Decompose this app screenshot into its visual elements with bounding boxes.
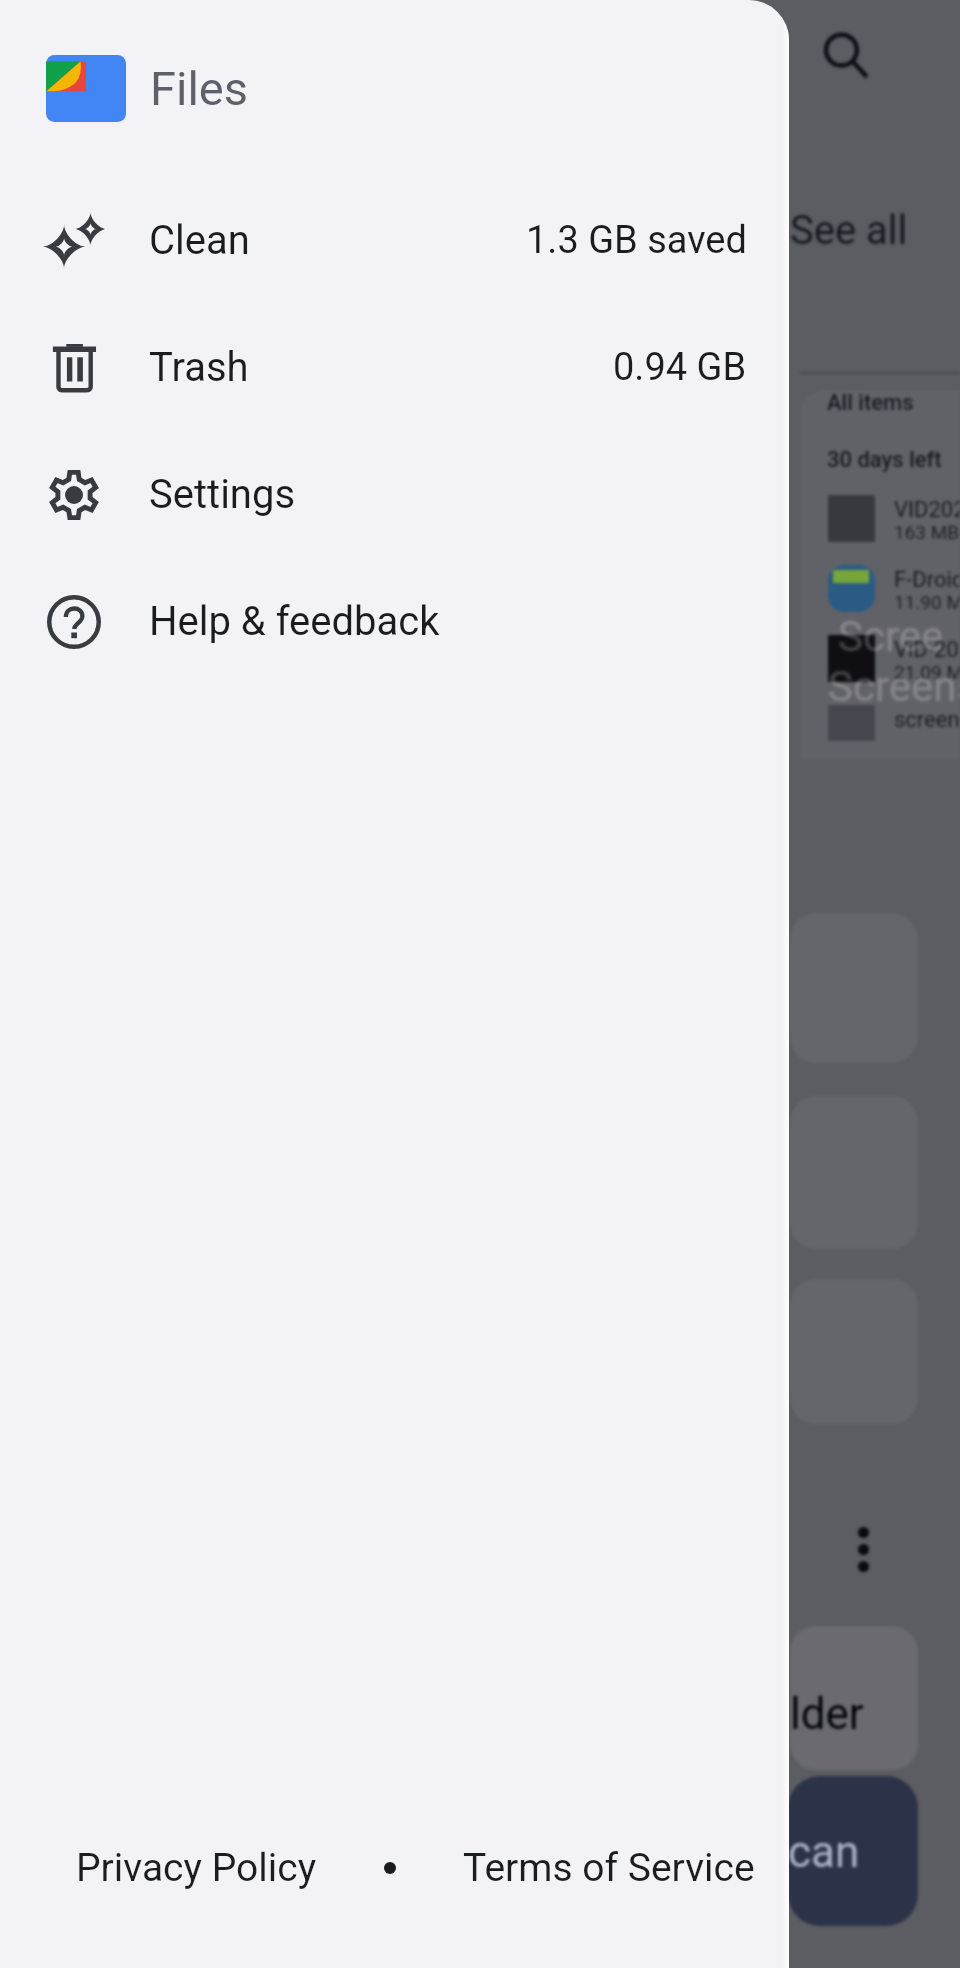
staticText: 163 MB, 30 [894, 521, 960, 543]
staticText: Screens [828, 662, 960, 711]
button[interactable]: See all [778, 193, 920, 268]
button[interactable]: Clean [0, 177, 789, 304]
staticText: See all [790, 207, 908, 254]
staticText: lder [790, 1688, 864, 1740]
staticText: Privacy Policy [76, 1845, 317, 1891]
staticText: Clean [149, 217, 250, 264]
staticText: Files [150, 61, 249, 116]
staticText: Terms of Service [463, 1845, 755, 1891]
staticText: 0.94 GB [613, 345, 747, 390]
staticText: can [788, 1826, 860, 1878]
staticText: ViD-2025 [894, 637, 960, 663]
button[interactable]: Scan [788, 1776, 918, 1926]
staticText: Help & feedback [149, 598, 440, 645]
staticText: All items [827, 390, 914, 416]
staticText: Scree [838, 612, 944, 661]
button[interactable]: Search [812, 22, 882, 92]
staticText: 30 days left [827, 447, 942, 473]
staticText: Settings [149, 471, 296, 518]
button[interactable]: Privacy Policy [56, 1829, 337, 1907]
button[interactable]: Close navigation drawer [0, 0, 960, 1968]
staticText: VID20250 [894, 497, 960, 523]
staticText: 11.90 MB, 3 [894, 591, 960, 613]
staticText: 21.09 MB, [894, 661, 960, 683]
staticText: screen-20 [894, 707, 960, 733]
staticText: Trash [149, 344, 249, 391]
button[interactable]: More options [833, 1519, 893, 1579]
staticText: F-Droid.a [894, 567, 960, 593]
button[interactable]: Settings [0, 431, 789, 558]
button[interactable]: Help & feedback [0, 558, 789, 685]
button[interactable]: Trash [0, 304, 789, 431]
staticText: 1.3 GB saved [526, 218, 747, 263]
button[interactable]: Terms of Service [443, 1829, 775, 1907]
